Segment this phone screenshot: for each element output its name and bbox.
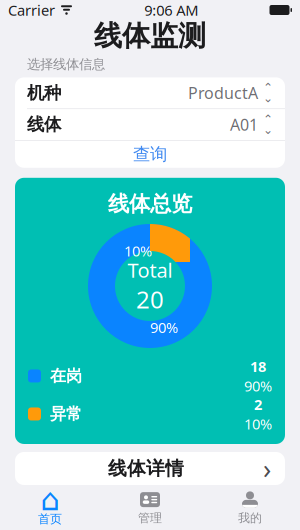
button[interactable]: 我的 <box>200 485 300 530</box>
staticText: 管理 <box>138 511 162 525</box>
staticText: 首页 <box>38 512 62 526</box>
staticText: 10% <box>124 241 152 260</box>
staticText: › <box>263 451 271 486</box>
button[interactable]: 查询 <box>15 141 285 168</box>
button[interactable]: 线体详情 <box>15 452 285 485</box>
staticText: ⌄ <box>263 123 273 137</box>
staticText: 机种 <box>27 82 61 103</box>
staticText: 线体详情 <box>108 457 184 480</box>
button[interactable]: ⌂ <box>0 485 100 530</box>
staticText: ProductA <box>188 82 258 103</box>
staticText: 在岗 <box>50 366 82 386</box>
staticText: 异常 <box>50 404 82 424</box>
staticText: 线体总览 <box>108 191 192 217</box>
staticText: ⌄ <box>263 91 273 105</box>
staticText: 选择线体信息 <box>27 56 105 72</box>
staticText: ⌃ <box>263 81 273 94</box>
staticText: 2 <box>254 394 262 414</box>
staticText: Carrier <box>8 0 55 20</box>
button[interactable]: 机种 <box>15 77 285 108</box>
staticText: 9:06 AM <box>144 0 198 20</box>
staticText: ⌃ <box>263 112 273 126</box>
staticText: 90% <box>244 376 272 395</box>
staticText: A01 <box>230 114 258 135</box>
staticText: 10% <box>244 414 272 433</box>
staticText: 线体监测 <box>94 19 206 53</box>
staticText: ⌂ <box>40 482 59 517</box>
staticText: 查询 <box>133 144 167 165</box>
button[interactable]: 线体 <box>15 109 285 140</box>
staticText: Total <box>127 257 172 283</box>
staticText: 20 <box>136 283 164 315</box>
staticText: 我的 <box>238 511 262 525</box>
button[interactable]: 管理 <box>100 485 200 530</box>
staticText: 18 <box>250 356 266 376</box>
staticText: 90% <box>150 317 178 337</box>
staticText: 线体 <box>27 114 61 135</box>
